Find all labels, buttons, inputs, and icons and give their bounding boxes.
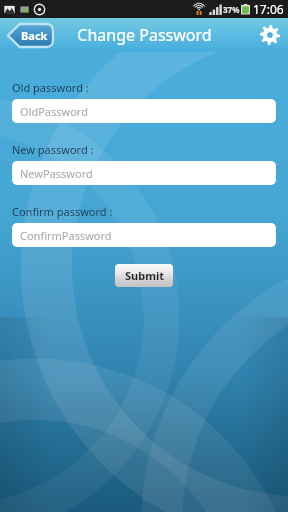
staticText: Old password :: [12, 80, 89, 95]
button[interactable]: OldPassword: [12, 99, 276, 123]
staticText: OldPassword: [20, 104, 88, 119]
button[interactable]: Submit: [115, 264, 173, 287]
staticText: 17:06: [253, 1, 284, 17]
button[interactable]: NewPassword: [12, 161, 276, 185]
staticText: Back: [21, 28, 48, 43]
button[interactable]: Settings: [259, 24, 281, 46]
staticText: Confirm password :: [12, 204, 113, 219]
staticText: New password :: [12, 142, 94, 157]
staticText: 37%: [223, 4, 240, 15]
button[interactable]: ConfirmPassword: [12, 223, 276, 247]
button[interactable]: Back: [8, 24, 53, 47]
staticText: ConfirmPassword: [20, 228, 112, 243]
staticText: Submit: [125, 268, 164, 283]
staticText: NewPassword: [20, 166, 93, 181]
staticText: Change Password: [77, 24, 212, 46]
